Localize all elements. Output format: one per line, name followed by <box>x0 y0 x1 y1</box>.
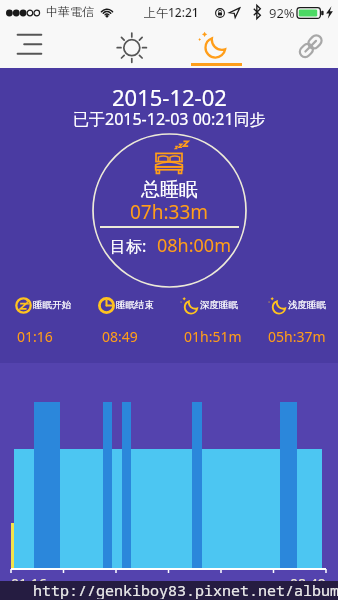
staticText: 01h:51m <box>184 327 242 346</box>
staticText: 92% <box>269 4 295 22</box>
staticText: 深度睡眠 <box>200 299 238 311</box>
staticText: 中華電信 <box>46 4 94 19</box>
button[interactable]: Link devices <box>283 26 338 68</box>
staticText: 上午12:21 <box>144 4 199 20</box>
staticText: 总睡眠 <box>141 178 198 202</box>
staticText: 目标: <box>110 235 147 257</box>
staticText: 睡眠结束 <box>116 299 154 311</box>
button[interactable]: Night mode <box>188 26 248 68</box>
staticText: 2015-12-02 <box>112 82 227 112</box>
staticText: 01:16 <box>11 574 47 593</box>
staticText: 08:49 <box>102 327 138 346</box>
staticText: http://genkiboy83.pixnet.net/album <box>33 580 338 599</box>
staticText: 已于2015-12-03 00:21同步 <box>73 108 266 130</box>
staticText: 05h:37m <box>268 327 326 346</box>
button[interactable]: 睡眠开始 <box>15 296 71 314</box>
button[interactable]: Menu <box>2 26 58 68</box>
staticText: 睡眠开始 <box>33 299 71 311</box>
button[interactable]: Day mode <box>104 26 160 68</box>
button[interactable]: 浅度睡眠 <box>268 296 326 314</box>
button[interactable]: 深度睡眠 <box>180 296 238 314</box>
button[interactable]: 睡眠结束 <box>98 296 154 314</box>
staticText: 08:49 <box>290 574 326 593</box>
staticText: 07h:33m <box>130 199 209 225</box>
staticText: 08h:00m <box>157 233 231 258</box>
staticText: 01:16 <box>17 327 53 346</box>
staticText: 浅度睡眠 <box>288 299 326 311</box>
